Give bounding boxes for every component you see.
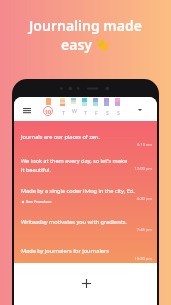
button[interactable]: S (101, 97, 112, 121)
button[interactable]: 10 (39, 97, 57, 121)
staticText: Made by journalers for journalers (21, 247, 109, 255)
staticText: easy (61, 35, 92, 54)
button[interactable]: Expand calendar (123, 97, 157, 121)
button[interactable]: T (79, 97, 90, 121)
staticText: Writeaday motivates you with gradients. (21, 218, 127, 226)
staticText: S (117, 109, 120, 116)
staticText: T (62, 109, 65, 116)
staticText: F (95, 109, 98, 116)
staticText: Made by a single coder living in the cit… (21, 187, 135, 195)
staticText: Journaling made (29, 16, 142, 35)
staticText: S (106, 109, 109, 116)
button[interactable]: S (112, 97, 123, 121)
staticText: 6:15 am (137, 142, 152, 147)
button[interactable]: T (57, 97, 68, 121)
staticText: 10:30 pm (134, 256, 152, 261)
button[interactable]: Writeaday motivates you with gradients. (14, 212, 157, 241)
staticText: 12:00 pm (134, 166, 152, 171)
button[interactable]: New entry (77, 274, 95, 292)
button[interactable]: Made by journalers for journalers (14, 241, 157, 262)
staticText: T (84, 109, 87, 116)
button[interactable]: Made by a single coder living in the cit… (14, 181, 157, 212)
staticText: W (72, 107, 77, 114)
staticText: 10 (45, 108, 51, 115)
staticText: We look at them every day, so let's make… (21, 157, 128, 174)
staticText: 4:20 pm (136, 196, 152, 201)
button[interactable]: W (68, 97, 79, 121)
button[interactable]: F (90, 97, 101, 121)
button[interactable]: Menu (14, 97, 39, 121)
staticText: 7:45 pm (136, 227, 152, 232)
staticText: San Francisco (26, 199, 52, 204)
staticText: Journals are our places of zen. (21, 133, 100, 141)
button[interactable]: Journals are our places of zen. (14, 127, 157, 151)
button[interactable]: We look at them every day, so let's make… (14, 151, 157, 181)
